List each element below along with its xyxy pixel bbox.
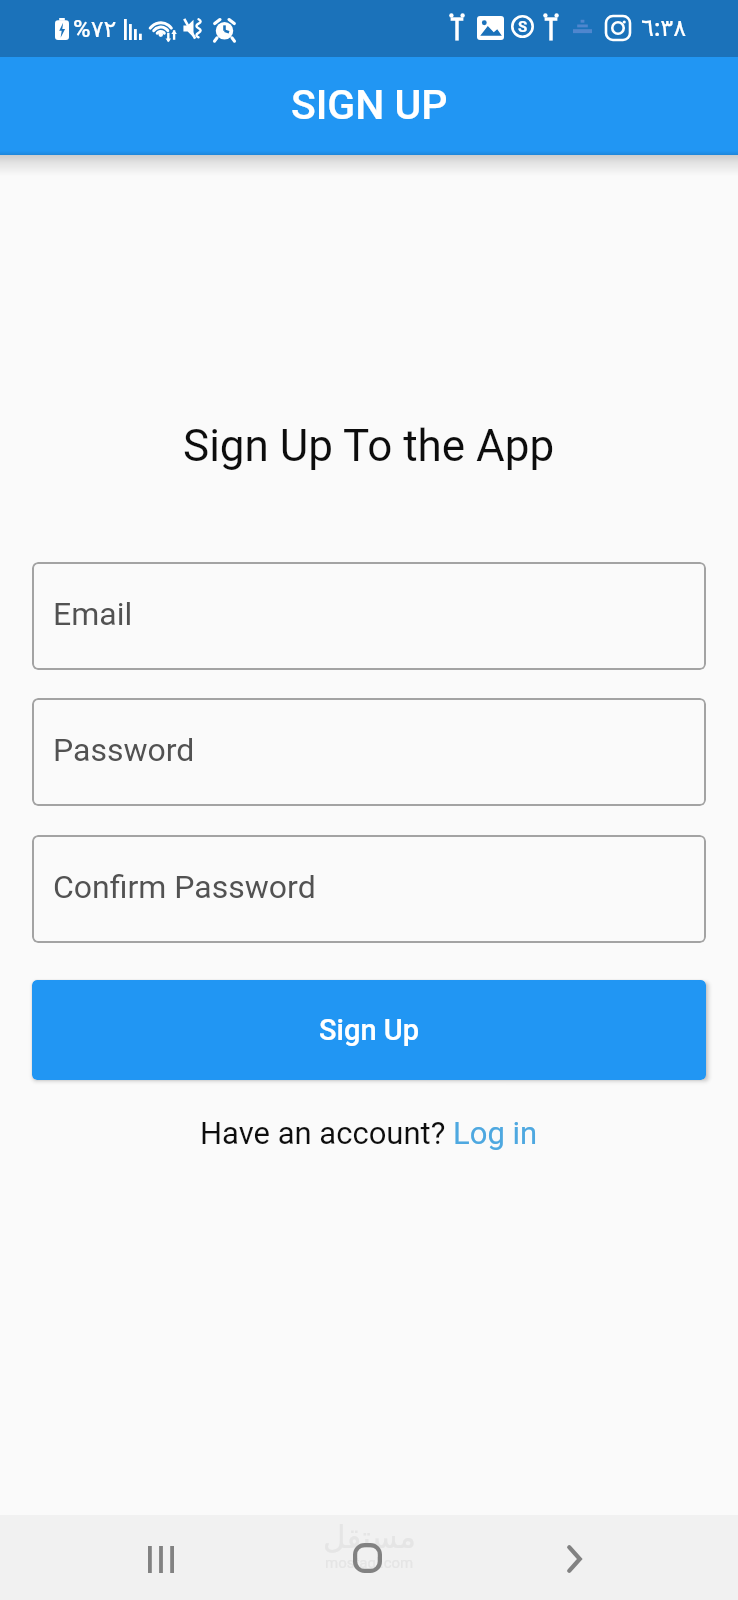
staticText: S bbox=[518, 18, 528, 36]
staticText: ٦:٣٨ bbox=[641, 14, 687, 42]
staticText: Sign Up bbox=[319, 1013, 419, 1047]
staticText: Password bbox=[53, 731, 195, 769]
button[interactable]: Home bbox=[319, 1529, 415, 1587]
staticText: Sign Up To the App bbox=[183, 420, 555, 472]
staticText: mostaql.com bbox=[325, 1554, 414, 1572]
button[interactable]: Sign Up bbox=[32, 980, 706, 1080]
button[interactable]: Have an account? Log in bbox=[200, 1115, 538, 1151]
staticText: مستقل bbox=[323, 1519, 416, 1555]
staticText: SIGN UP bbox=[291, 81, 448, 129]
button[interactable]: Back bbox=[526, 1530, 622, 1588]
button[interactable]: Password bbox=[32, 698, 706, 806]
staticText: Email bbox=[53, 595, 133, 633]
button[interactable]: Email bbox=[32, 562, 706, 670]
button[interactable]: Recent apps bbox=[113, 1530, 209, 1588]
staticText: Confirm Password bbox=[53, 868, 316, 906]
staticText: %٧٢ bbox=[73, 15, 117, 43]
button[interactable]: Confirm Password bbox=[32, 835, 706, 943]
